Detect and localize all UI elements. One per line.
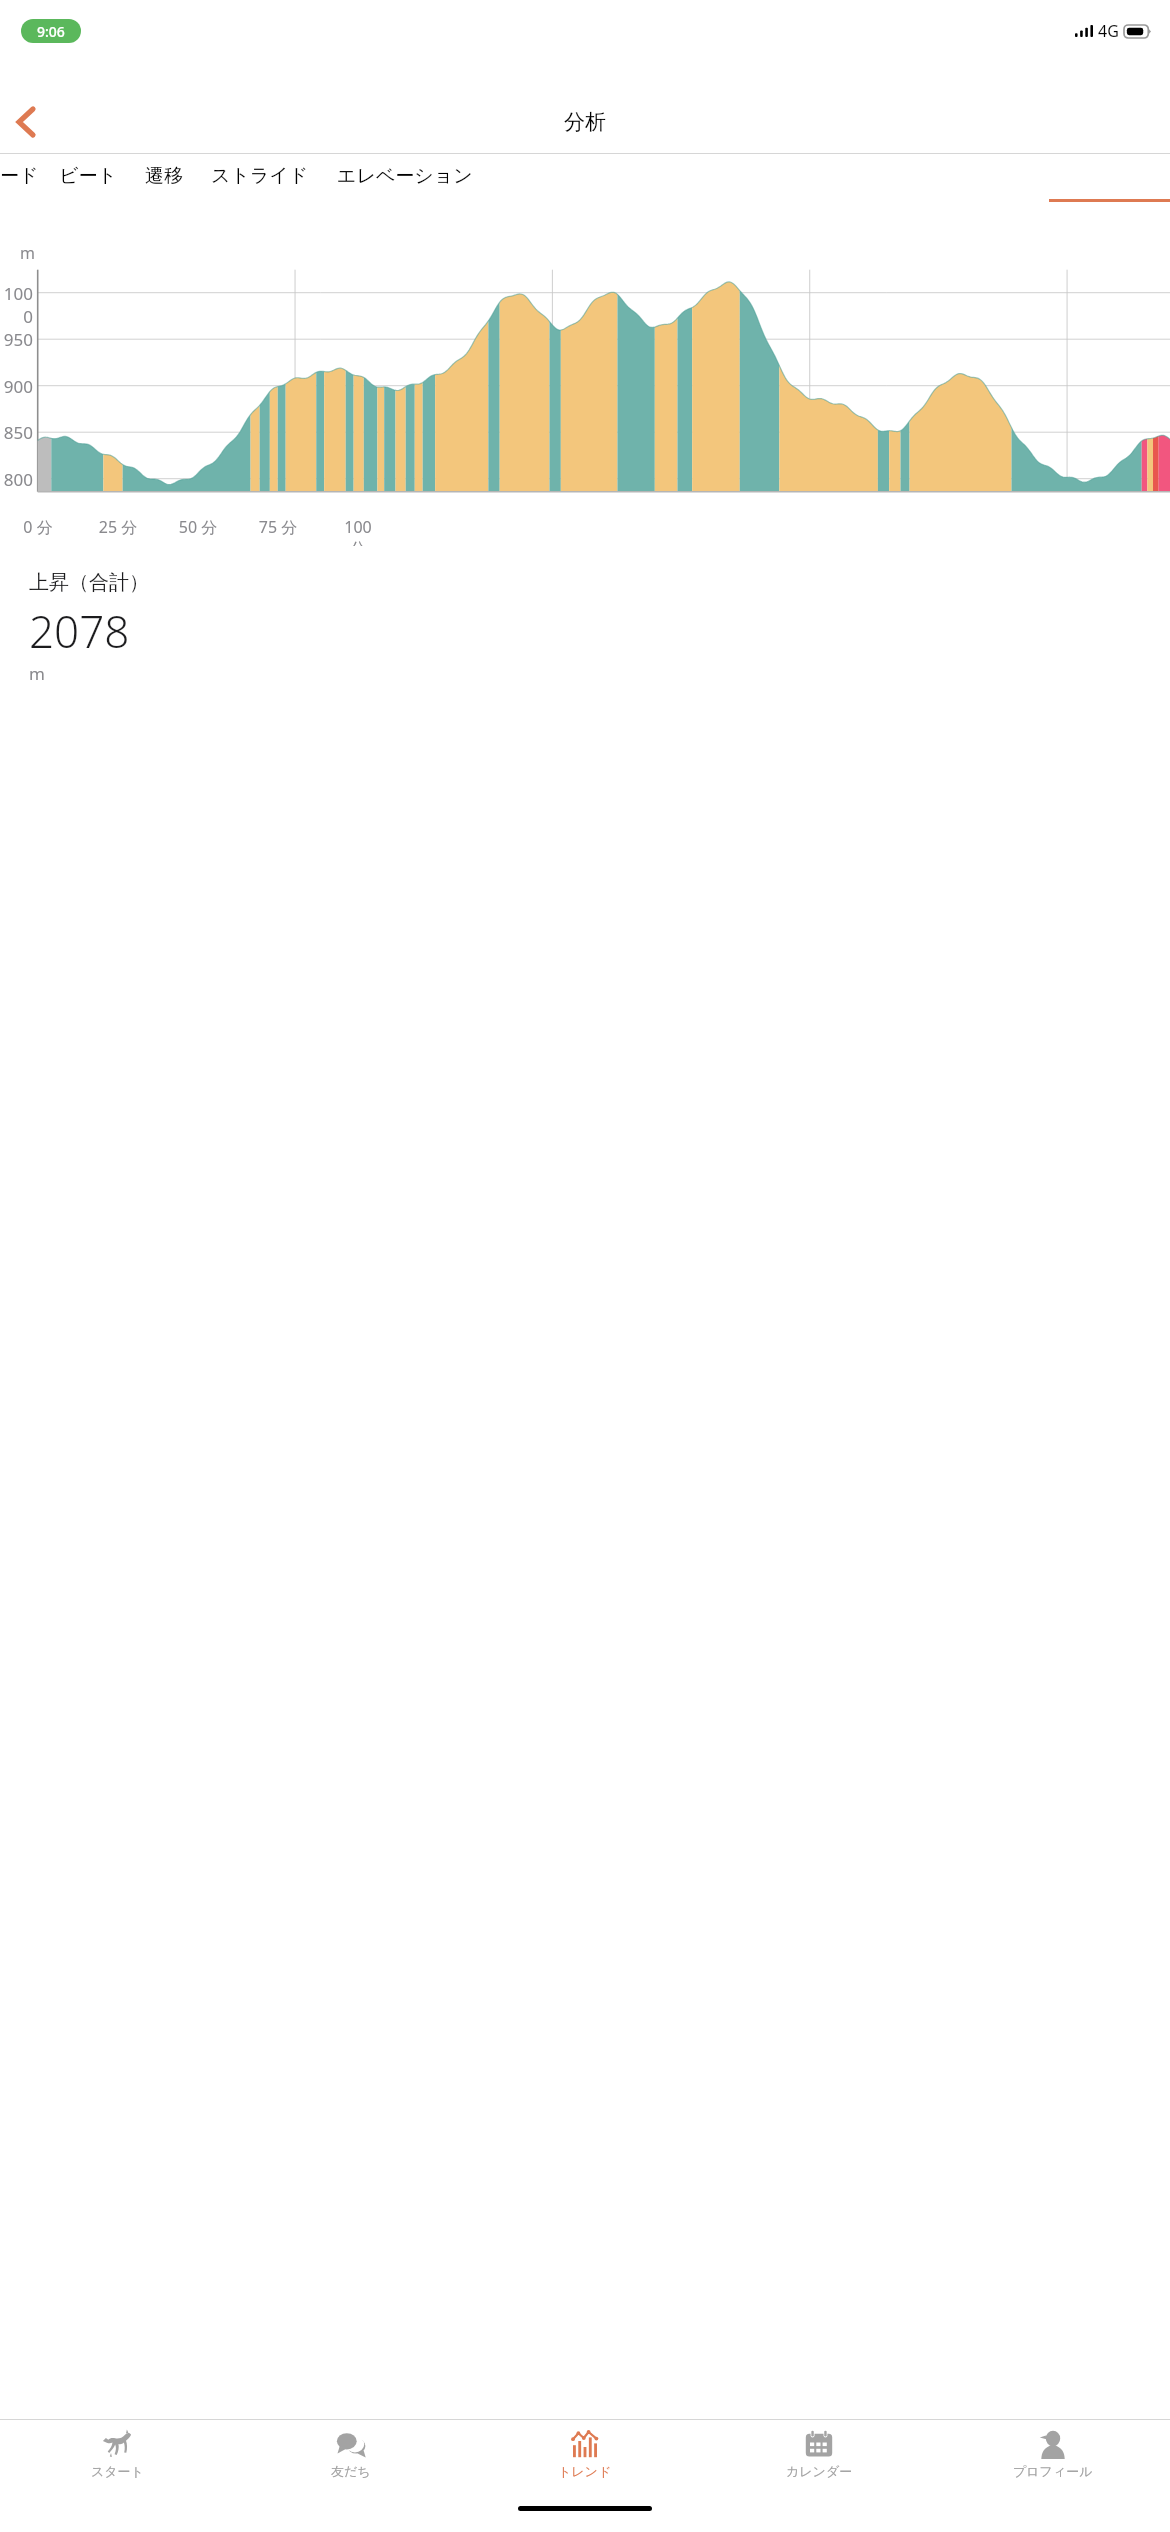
staticText: m bbox=[29, 662, 45, 685]
button[interactable]: カレンダー bbox=[702, 2420, 936, 2498]
staticText: プロフィール bbox=[1013, 2463, 1093, 2479]
button[interactable]: 友だち bbox=[234, 2420, 468, 2498]
button[interactable]: ストライド bbox=[211, 154, 309, 198]
button[interactable]: Back bbox=[0, 96, 52, 148]
staticText: 0 分 bbox=[18, 516, 58, 538]
button[interactable]: プロフィール bbox=[936, 2420, 1170, 2498]
staticText: ード bbox=[0, 164, 39, 188]
staticText: 850 bbox=[3, 421, 33, 444]
staticText: 上昇（合計） bbox=[29, 570, 149, 595]
staticText: 2078 bbox=[29, 601, 130, 661]
staticText: 25 分 bbox=[98, 516, 138, 538]
staticText: 100 分 bbox=[338, 516, 378, 546]
staticText: 50 分 bbox=[178, 516, 218, 538]
staticText: 遷移 bbox=[145, 164, 183, 188]
staticText: 950 bbox=[3, 328, 33, 351]
staticText: 友だち bbox=[331, 2463, 371, 2479]
staticText: 分析 bbox=[564, 109, 606, 135]
staticText: 9:06 bbox=[37, 22, 65, 41]
button[interactable]: エレベーション bbox=[337, 154, 473, 198]
staticText: トレンド bbox=[558, 2463, 612, 2479]
button[interactable]: トレンド bbox=[468, 2420, 702, 2498]
button[interactable]: 遷移 bbox=[145, 154, 183, 198]
staticText: スタート bbox=[91, 2463, 144, 2479]
staticText: m bbox=[20, 242, 35, 264]
staticText: ストライド bbox=[211, 164, 309, 188]
staticText: 1000 bbox=[3, 282, 33, 328]
staticText: 800 bbox=[3, 468, 33, 491]
staticText: エレベーション bbox=[337, 164, 473, 188]
button[interactable]: ード bbox=[0, 154, 39, 198]
button[interactable]: スタート bbox=[0, 2420, 234, 2498]
staticText: ビート bbox=[59, 164, 117, 188]
staticText: カレンダー bbox=[786, 2463, 853, 2479]
staticText: 900 bbox=[3, 375, 33, 398]
staticText: 4G bbox=[1098, 20, 1119, 42]
button[interactable]: ビート bbox=[59, 154, 117, 198]
staticText: 75 分 bbox=[258, 516, 298, 538]
